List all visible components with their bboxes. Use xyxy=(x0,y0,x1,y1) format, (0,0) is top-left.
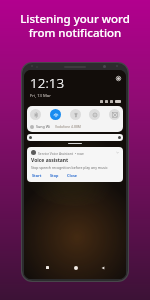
button[interactable]: Close xyxy=(66,172,79,179)
button[interactable]: Recents xyxy=(43,263,52,272)
staticText: Listening your word from notification xyxy=(8,11,142,40)
button[interactable]: Quick setting 0 xyxy=(30,109,41,120)
button[interactable]: Start xyxy=(31,172,43,179)
staticText: Vodafone 4.88M xyxy=(55,124,81,129)
button[interactable]: Quick setting 4 xyxy=(109,109,120,120)
button[interactable]: Quick setting 3 xyxy=(89,109,100,120)
staticText: Start xyxy=(32,173,42,178)
staticText: Stop xyxy=(50,173,59,178)
staticText: Stop speech recognition before play any … xyxy=(31,165,108,170)
staticText: Service Voice Assistant xyxy=(38,151,73,155)
button[interactable]: Settings xyxy=(116,76,121,81)
button[interactable]: Quick setting 2 xyxy=(70,109,81,120)
staticText: 12:13 xyxy=(30,74,65,92)
staticText: Voice assistant xyxy=(31,157,69,164)
staticText: Sung Wi xyxy=(36,124,50,129)
staticText: Fri, 13 Mar xyxy=(30,93,51,99)
staticText: Close xyxy=(67,173,78,178)
button[interactable]: Home xyxy=(71,263,80,272)
button[interactable]: Service Voice Assistant xyxy=(27,147,123,182)
button[interactable] xyxy=(27,134,123,141)
staticText: • now xyxy=(75,151,84,155)
button[interactable]: Back xyxy=(98,263,107,272)
button[interactable]: Stop xyxy=(49,172,60,179)
button[interactable]: Quick setting 1 xyxy=(50,109,61,120)
